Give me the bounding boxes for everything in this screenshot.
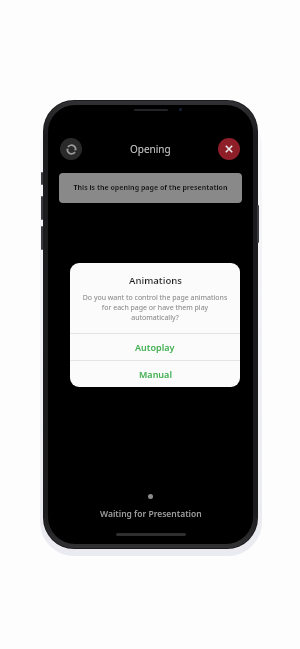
button[interactable]: This is the opening page of the presenta… bbox=[59, 173, 242, 203]
staticText: Do you want to control the page animatio… bbox=[80, 293, 230, 323]
staticText: Manual bbox=[139, 368, 172, 380]
staticText: Animations bbox=[129, 274, 182, 287]
staticText: Opening bbox=[130, 142, 171, 156]
staticText: Waiting for Presentation bbox=[100, 508, 202, 520]
button[interactable]: Refresh presentation bbox=[60, 138, 82, 160]
staticText: Autoplay bbox=[135, 341, 175, 353]
staticText: This is the opening page of the presenta… bbox=[73, 183, 228, 193]
button[interactable]: Manual bbox=[70, 361, 240, 387]
button[interactable]: Autoplay bbox=[70, 334, 240, 360]
button[interactable]: Close bbox=[218, 138, 240, 160]
